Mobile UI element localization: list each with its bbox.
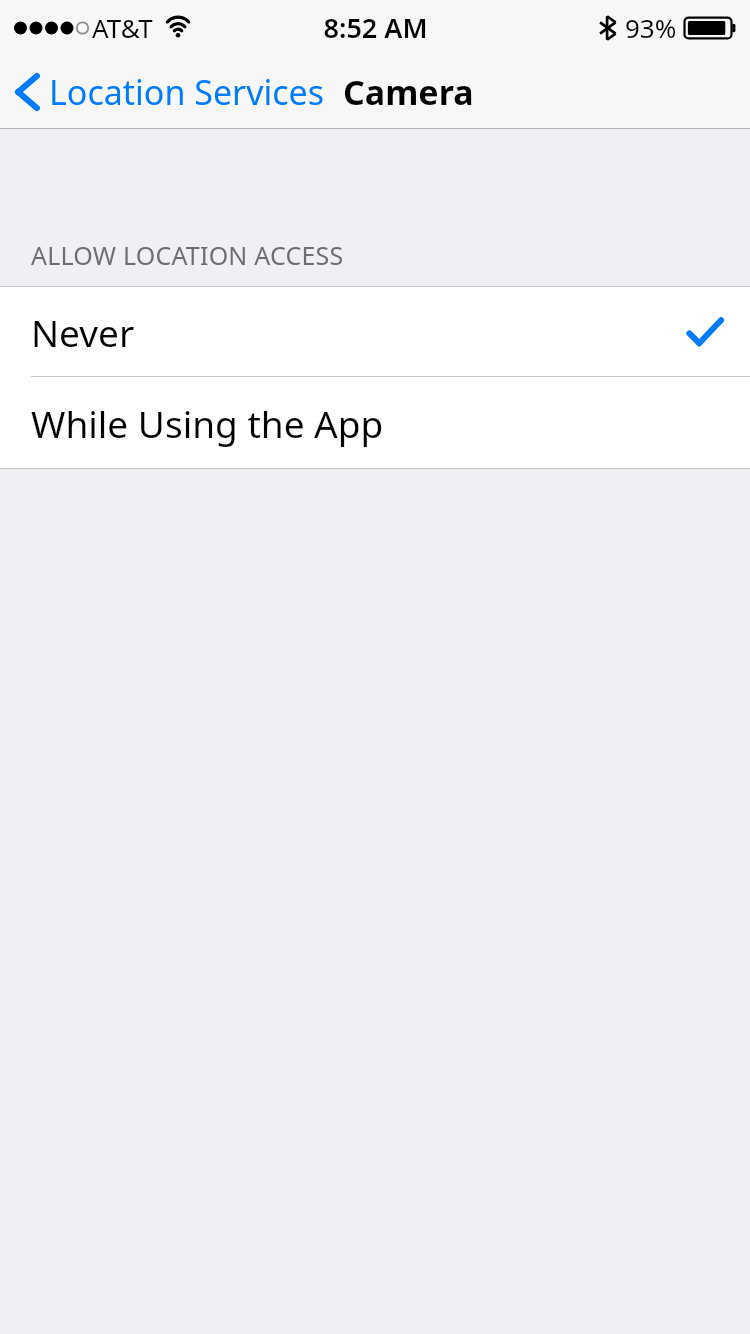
button[interactable]: While Using the App bbox=[0, 377, 750, 468]
staticText: 93% bbox=[625, 10, 677, 45]
staticText: While Using the App bbox=[31, 398, 384, 448]
staticText: Camera bbox=[343, 69, 474, 115]
staticText: AT&T bbox=[92, 10, 153, 45]
staticText: ALLOW LOCATION ACCESS bbox=[31, 238, 344, 267]
staticText: 8:52 AM bbox=[323, 9, 428, 46]
other: Selected bbox=[688, 318, 722, 346]
button[interactable]: Location Services bbox=[0, 63, 332, 121]
button[interactable]: Never bbox=[0, 287, 750, 376]
staticText: Never bbox=[31, 307, 135, 357]
staticText: Location Services bbox=[49, 69, 324, 115]
